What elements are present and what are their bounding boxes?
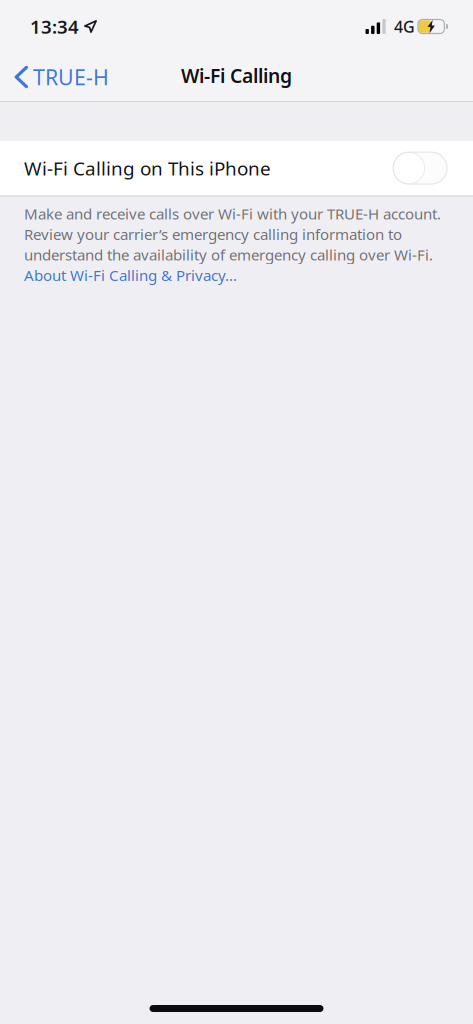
staticText: Wi-Fi Calling on This iPhone <box>24 155 271 181</box>
button[interactable]: Back to TRUE-H <box>0 53 121 101</box>
staticText: Review your carrier’s emergency calling … <box>24 224 402 244</box>
button[interactable]: About Wi-Fi Calling & Privacy... <box>24 265 237 285</box>
staticText: 4G <box>394 16 415 37</box>
staticText: 13:34 <box>30 14 79 39</box>
staticText: Wi-Fi Calling <box>181 62 292 89</box>
button[interactable]: Wi-Fi Calling on This iPhone <box>393 152 447 184</box>
button[interactable]: Wi-Fi Calling on This iPhone <box>0 141 473 196</box>
staticText: Make and receive calls over Wi-Fi with y… <box>24 203 441 224</box>
staticText: TRUE-H <box>33 62 109 92</box>
staticText: About Wi-Fi Calling & Privacy... <box>24 265 237 285</box>
staticText: understand the availability of emergency… <box>24 244 433 265</box>
